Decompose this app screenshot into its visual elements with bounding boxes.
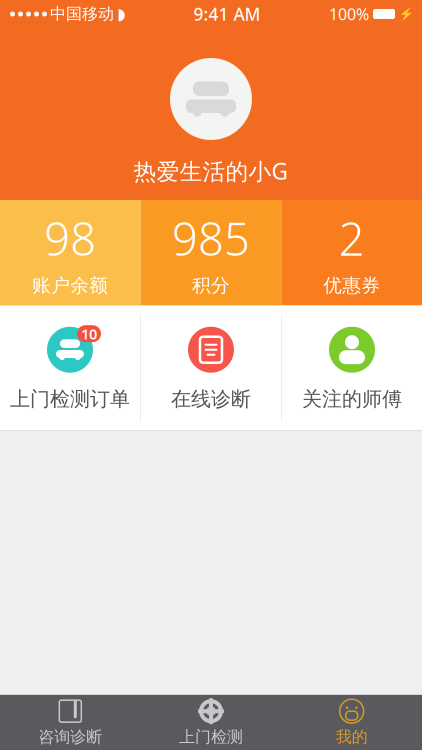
button[interactable]: 在线诊断 bbox=[141, 305, 281, 431]
staticText: 985 bbox=[172, 208, 250, 268]
staticText: 我的 bbox=[336, 727, 368, 747]
button[interactable]: 关注的师傅 bbox=[282, 305, 422, 431]
button[interactable]: 上门检测 bbox=[141, 695, 281, 750]
button[interactable]: 2 bbox=[281, 200, 422, 305]
staticText: 10 bbox=[81, 324, 97, 343]
staticText: 98 bbox=[44, 208, 96, 268]
staticText: 100% bbox=[329, 3, 369, 25]
staticText: 2 bbox=[339, 208, 365, 268]
staticText: 上门检测订单 bbox=[10, 387, 130, 411]
button[interactable]: 10 bbox=[0, 305, 140, 431]
staticText: 上门检测 bbox=[179, 727, 243, 747]
staticText: 优惠券 bbox=[323, 274, 380, 297]
staticText: ◗ bbox=[117, 5, 125, 23]
button[interactable]: 98 bbox=[0, 200, 141, 305]
staticText: 中国移动 bbox=[50, 4, 114, 24]
button[interactable]: 我的 bbox=[281, 695, 422, 750]
staticText: 9:41 AM bbox=[193, 2, 260, 25]
button[interactable]: 咨询诊断 bbox=[0, 695, 141, 750]
staticText: 积分 bbox=[192, 274, 230, 297]
staticText: 热爱生活的小G bbox=[133, 156, 288, 186]
staticText: 在线诊断 bbox=[171, 387, 251, 411]
staticText: 咨询诊断 bbox=[38, 727, 102, 747]
staticText: 账户余额 bbox=[32, 274, 108, 297]
button[interactable]: 985 bbox=[141, 200, 281, 305]
staticText: ⚡ bbox=[399, 7, 414, 21]
staticText: 关注的师傅 bbox=[302, 387, 402, 411]
